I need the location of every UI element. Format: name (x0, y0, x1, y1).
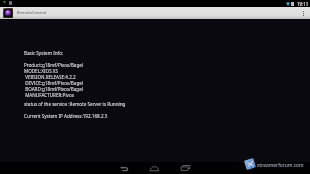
button[interactable]: More options (301, 9, 306, 18)
staticText: RemoteControl (17, 10, 47, 16)
staticText: VERSION.RELEASE:4.2.2 (24, 74, 76, 80)
staticText: Current System IP Address:192.168.2.5 (24, 113, 108, 119)
staticText: MANUFACTURER:Pivos (24, 92, 74, 98)
button[interactable]: Recent apps (174, 162, 197, 174)
button[interactable]: Back (112, 162, 135, 174)
staticText: xtreamerforum.com (257, 162, 304, 169)
staticText: Product:g18ref/Pivos/Bagel (24, 62, 84, 68)
staticText: Basic System Info: (24, 50, 64, 56)
staticText: BOARD:g18ref/Pivos/Bagel (24, 86, 83, 92)
button[interactable]: Home (143, 162, 166, 174)
staticText: status of the service :Remote Server is … (24, 101, 126, 107)
staticText: 19:11 (297, 1, 309, 7)
staticText: MODEL:XIOS XS (24, 68, 59, 74)
staticText: DEVICE:g18ref/Pivos/Bagel (24, 80, 84, 86)
